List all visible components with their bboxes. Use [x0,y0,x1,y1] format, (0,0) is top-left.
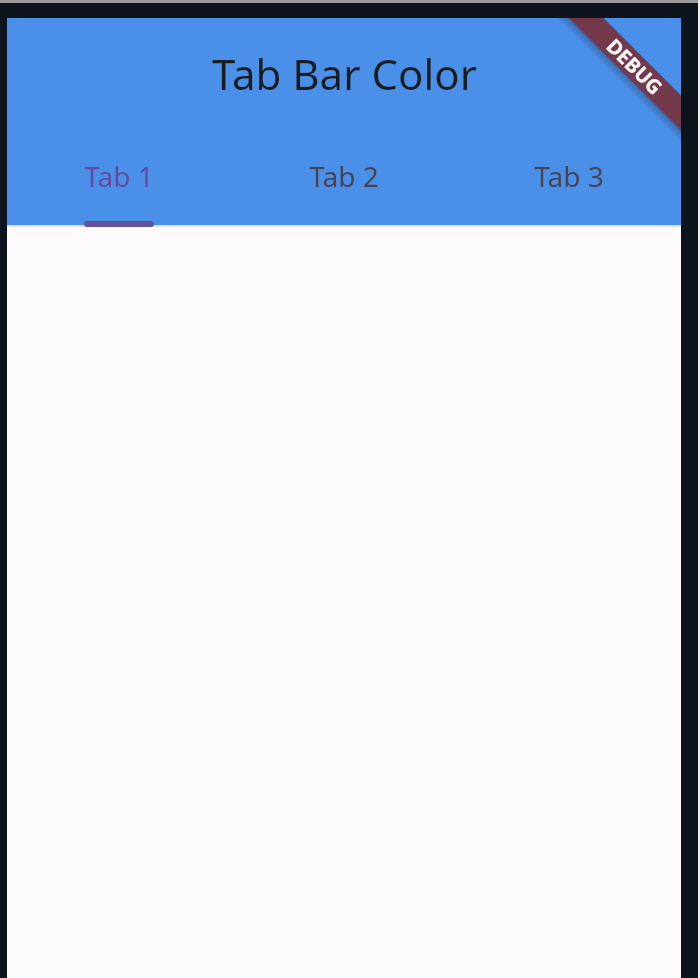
staticText: Tab 1 [84,157,154,195]
staticText: Tab 2 [309,157,379,195]
button[interactable]: Tab 2 [231,136,456,225]
staticText: Tab 3 [534,157,604,195]
button[interactable]: Tab 1 [7,136,231,225]
button[interactable]: Tab 3 [456,136,681,225]
other: DEBUG build banner [551,18,681,148]
staticText: Tab Bar Color [212,45,477,102]
